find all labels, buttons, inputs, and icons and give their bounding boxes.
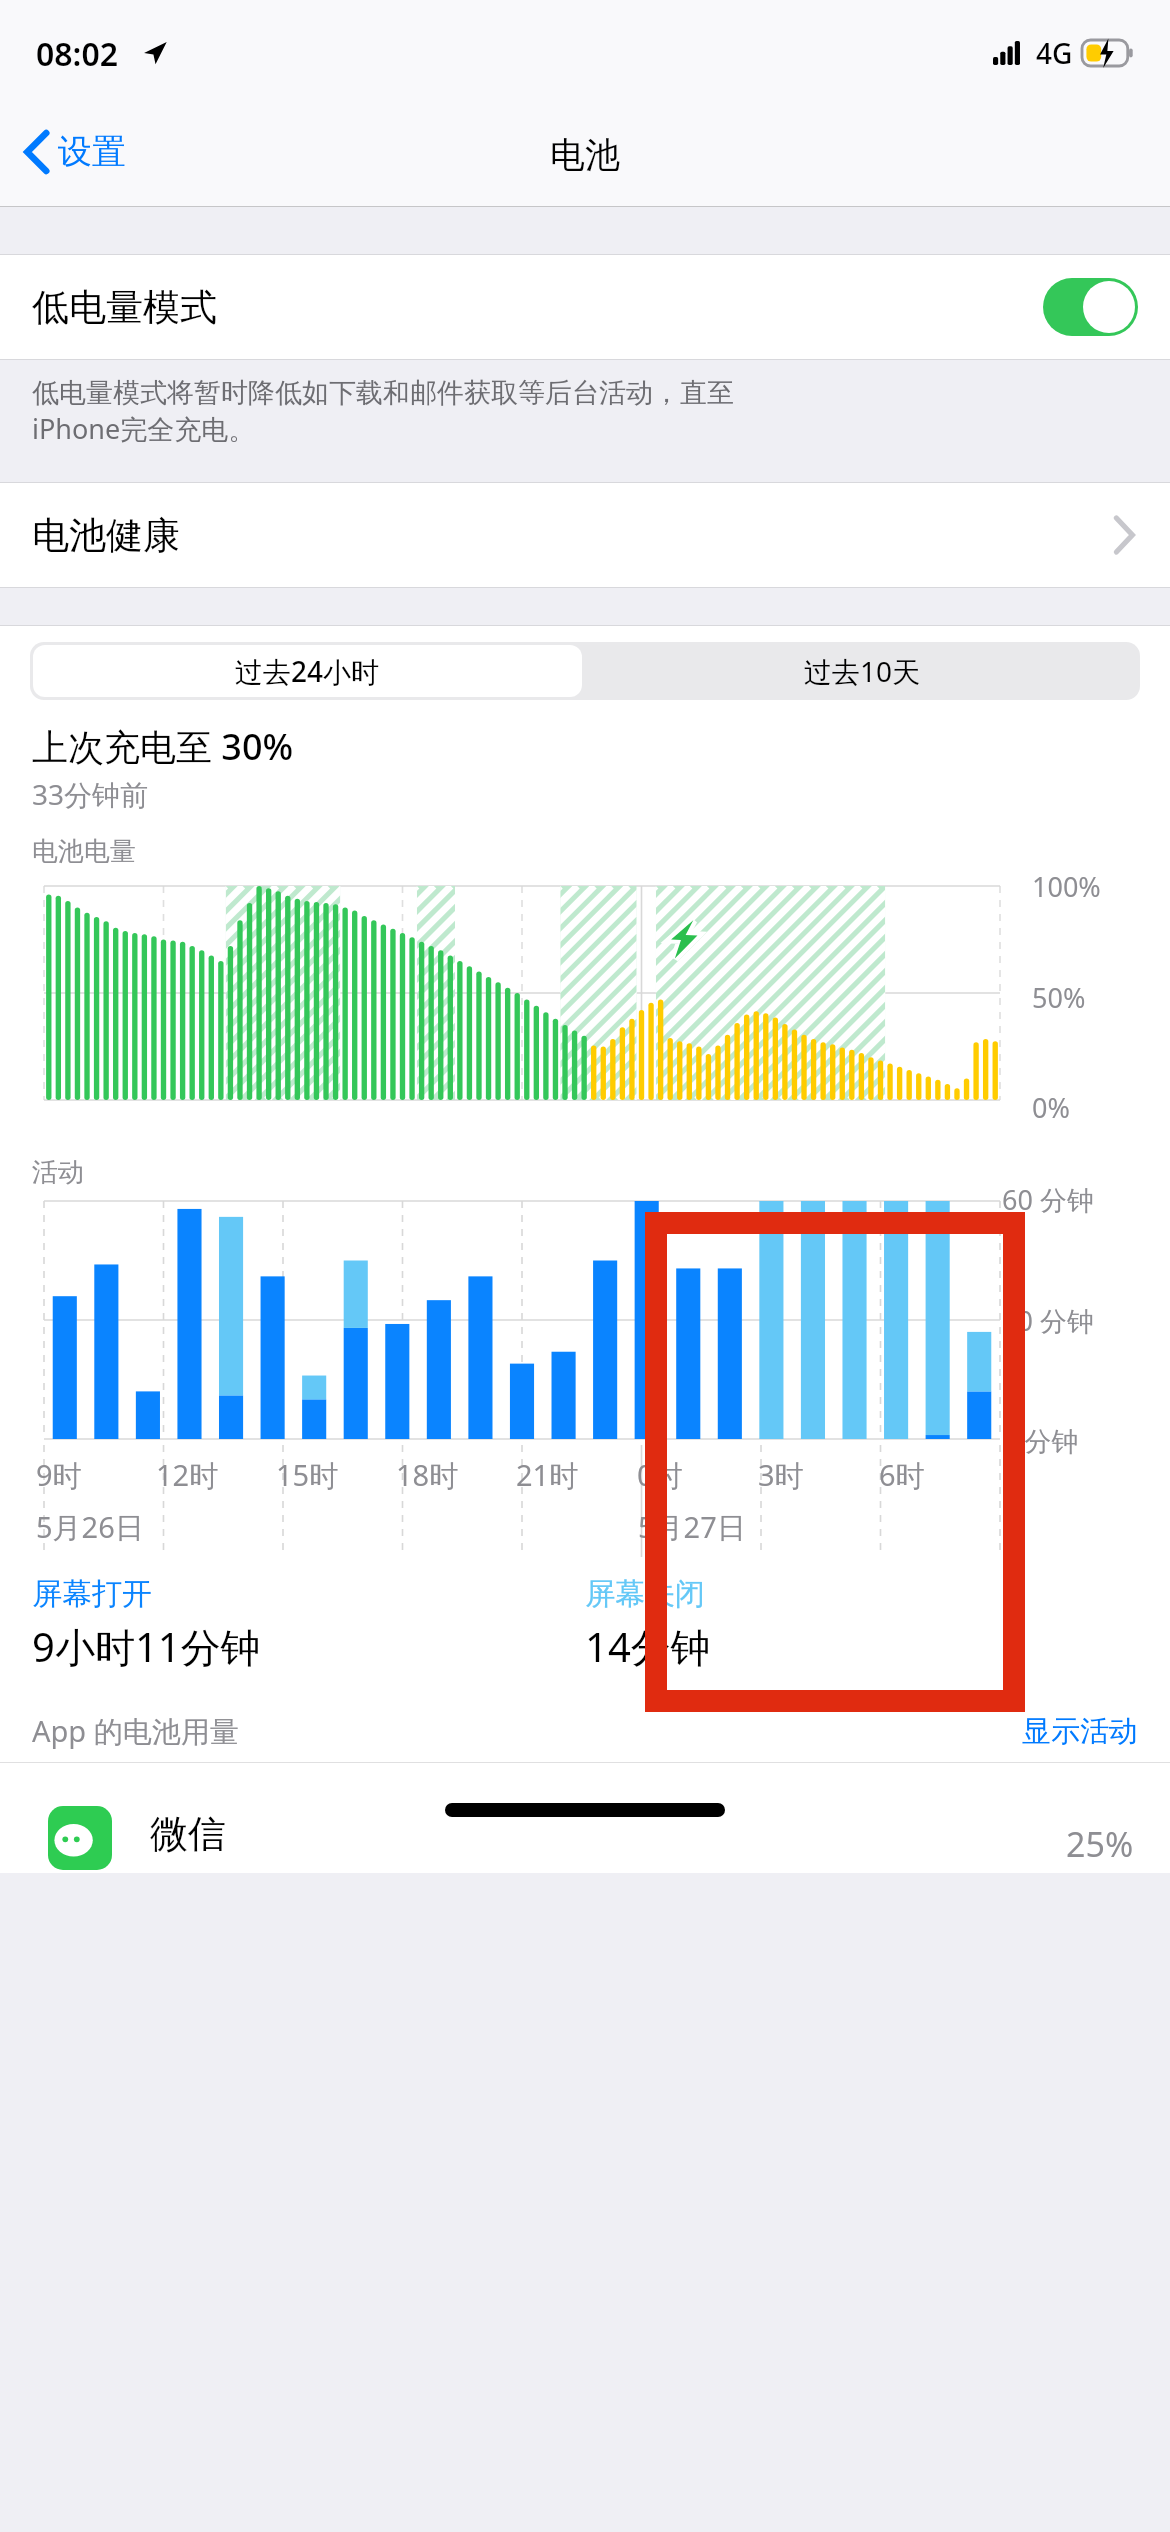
button[interactable]: 过去24小时 [33, 645, 582, 697]
staticText: 08:02 [36, 32, 119, 76]
staticText: 33分钟前 [32, 775, 149, 813]
staticText: 15时 [276, 1455, 339, 1495]
staticText: 屏幕关闭 [585, 1575, 705, 1613]
button[interactable]: 设置 [0, 122, 142, 181]
staticText: 过去24小时 [235, 652, 380, 690]
staticText: 100% [1032, 868, 1101, 905]
staticText: 50% [1032, 979, 1086, 1016]
button[interactable]: 电池健康 [0, 483, 1170, 587]
staticText: 低电量模式将暂时降低如下载和邮件获取等后台活动，直至 iPhone完全充电。 [32, 376, 734, 447]
staticText: 5月26日 [36, 1507, 144, 1547]
button[interactable]: 屏幕打开 [32, 1575, 585, 1674]
button[interactable]: 低电量模式 [0, 255, 1170, 359]
staticText: 5月27日 [638, 1507, 746, 1547]
button[interactable]: 屏幕关闭 [585, 1575, 1138, 1674]
button[interactable]: 微信 [0, 1763, 1170, 1873]
staticText: 0% [1032, 1089, 1070, 1126]
staticText: 设置 [58, 130, 126, 173]
staticText: 电池电量 [32, 835, 136, 868]
staticText: 60 分钟 [1002, 1181, 1094, 1218]
staticText: 0时 [637, 1455, 683, 1495]
staticText: 9小时11分钟 [32, 1619, 261, 1674]
button[interactable]: 过去10天 [585, 642, 1140, 700]
staticText: 微信 [150, 1810, 226, 1858]
staticText: 显示活动 [1022, 1713, 1138, 1750]
staticText: App 的电池用量 [32, 1711, 239, 1751]
button[interactable]: 低电量模式开关 [1043, 278, 1138, 336]
staticText: 9时 [36, 1455, 82, 1495]
staticText: 25% [1066, 1821, 1134, 1867]
staticText: 过去10天 [804, 652, 921, 690]
staticText: 电池健康 [32, 512, 180, 559]
staticText: 12时 [156, 1455, 219, 1495]
staticText: 活动 [32, 1156, 84, 1189]
staticText: 30 分钟 [1002, 1302, 1094, 1339]
staticText: 18时 [396, 1455, 459, 1495]
button[interactable]: 显示活动 [1006, 1713, 1170, 1750]
staticText: 低电量模式 [32, 284, 217, 331]
staticText: 21时 [516, 1455, 579, 1495]
staticText: 屏幕打开 [32, 1575, 152, 1613]
staticText: 上次充电至 30% [32, 722, 294, 771]
staticText: 电池 [550, 133, 620, 177]
staticText: 14分钟 [585, 1619, 711, 1674]
staticText: 3时 [758, 1455, 804, 1495]
staticText: 6时 [879, 1455, 925, 1495]
staticText: 4G [1036, 34, 1073, 72]
staticText: 0 分钟 [1002, 1422, 1079, 1459]
